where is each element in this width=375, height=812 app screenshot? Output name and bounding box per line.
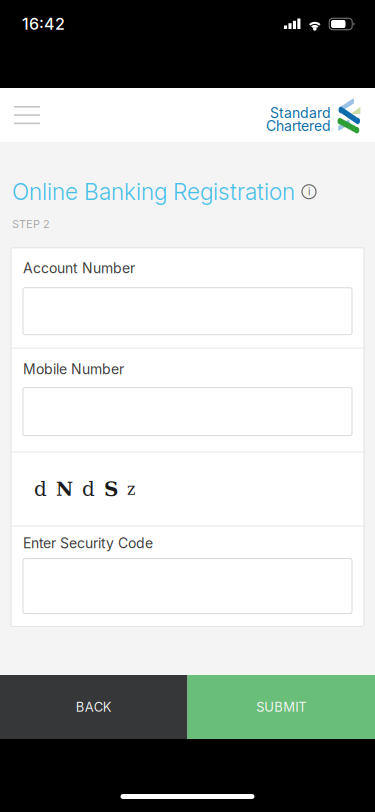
- button[interactable]: More information: [301, 184, 317, 200]
- staticText: SUBMIT: [256, 699, 306, 715]
- staticText: z: [127, 480, 135, 498]
- staticText: BACK: [76, 699, 112, 715]
- staticText: 16:42: [22, 14, 65, 34]
- staticText: Enter Security Code: [23, 535, 153, 551]
- staticText: Chartered: [266, 117, 331, 134]
- staticText: S: [104, 477, 118, 501]
- staticText: Account Number: [23, 260, 135, 277]
- staticText: Online Banking Registration: [12, 178, 295, 205]
- staticText: i: [308, 186, 310, 198]
- staticText: N: [56, 478, 73, 500]
- staticText: d: [34, 477, 47, 501]
- staticText: Mobile Number: [23, 361, 124, 378]
- staticText: d: [82, 477, 95, 501]
- button[interactable]: SUBMIT: [187, 675, 375, 739]
- button[interactable]: Menu: [0, 89, 54, 141]
- staticText: Standard: [270, 105, 331, 121]
- button[interactable]: BACK: [0, 675, 187, 739]
- staticText: STEP 2: [12, 217, 50, 231]
